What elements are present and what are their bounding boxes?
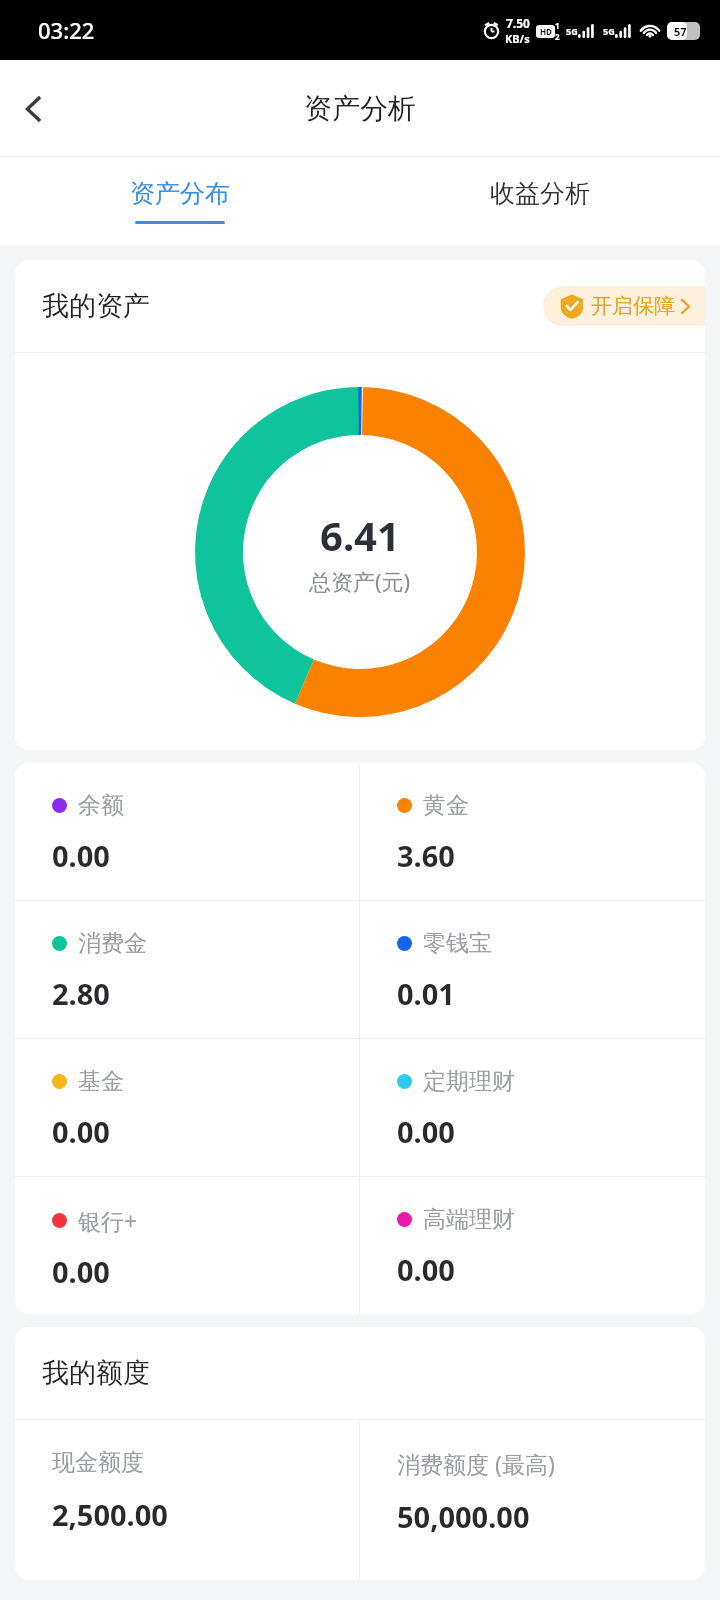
staticText: 0.01 — [397, 974, 455, 1013]
staticText: 消费金 — [78, 929, 147, 958]
staticText: 黄金 — [423, 791, 469, 820]
staticText: KB/s — [505, 31, 530, 46]
staticText: 0.00 — [52, 1112, 110, 1151]
button[interactable]: 现金额度 — [15, 1420, 359, 1580]
staticText: 余额 — [78, 791, 124, 820]
button[interactable]: 消费额度 (最高) — [360, 1420, 705, 1580]
staticText: 3.60 — [397, 836, 455, 875]
staticText: 5G — [603, 25, 615, 37]
button[interactable]: 基金 — [15, 1039, 359, 1176]
button[interactable]: 开启保障 — [543, 286, 705, 326]
staticText: 57 — [674, 24, 687, 39]
staticText: 资产分布 — [130, 178, 230, 209]
button[interactable]: 收益分析 — [360, 157, 720, 245]
staticText: 0.00 — [52, 836, 110, 875]
staticText: 开启保障 — [591, 293, 675, 319]
button[interactable]: 黄金 — [360, 763, 705, 900]
staticText: 基金 — [78, 1067, 124, 1096]
staticText: 1 — [555, 20, 560, 31]
button[interactable]: 余额 — [15, 763, 359, 900]
staticText: 6.41 — [320, 508, 400, 562]
staticText: 2,500.00 — [52, 1495, 168, 1534]
staticText: 0.00 — [397, 1250, 455, 1289]
staticText: 0.00 — [397, 1112, 455, 1151]
staticText: 资产分析 — [304, 91, 416, 126]
button[interactable]: 零钱宝 — [360, 901, 705, 1038]
staticText: 现金额度 — [52, 1448, 144, 1477]
button[interactable]: 高端理财 — [360, 1177, 705, 1314]
staticText: 零钱宝 — [423, 929, 492, 958]
staticText: 我的额度 — [42, 1356, 150, 1390]
staticText: 0.00 — [52, 1252, 110, 1291]
button[interactable]: 资产分布 — [0, 157, 360, 245]
staticText: 03:22 — [38, 15, 95, 45]
button[interactable]: Back — [6, 81, 62, 137]
staticText: 2 — [555, 31, 560, 42]
staticText: 50,000.00 — [397, 1497, 530, 1536]
staticText: 消费额度 (最高) — [397, 1448, 555, 1479]
staticText: 银行+ — [78, 1205, 138, 1236]
button[interactable]: 定期理财 — [360, 1039, 705, 1176]
staticText: 高端理财 — [423, 1205, 515, 1234]
button[interactable]: 银行+ — [15, 1177, 359, 1314]
staticText: 7.50 — [506, 15, 530, 31]
staticText: 我的资产 — [42, 289, 150, 323]
staticText: HD — [540, 26, 552, 37]
staticText: 5G — [566, 25, 578, 37]
staticText: 2.80 — [52, 974, 110, 1013]
staticText: 总资产(元) — [309, 566, 411, 596]
button[interactable]: 消费金 — [15, 901, 359, 1038]
staticText: 收益分析 — [490, 178, 590, 209]
staticText: 定期理财 — [423, 1067, 515, 1096]
